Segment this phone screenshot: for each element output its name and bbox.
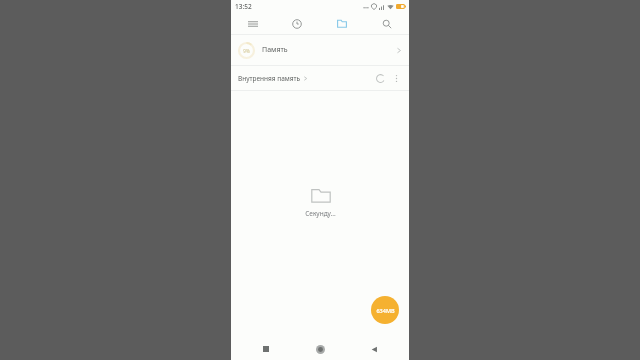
button[interactable]: Recents xyxy=(249,338,283,360)
staticText: 634MB xyxy=(376,307,395,314)
button[interactable]: 634MB xyxy=(371,296,399,324)
button[interactable]: Files xyxy=(319,13,364,34)
button[interactable]: Внутренняя память xyxy=(238,74,308,83)
button[interactable]: 9% xyxy=(231,35,409,65)
staticText: Секунду... xyxy=(305,209,336,218)
button[interactable]: Home xyxy=(303,338,337,360)
button[interactable]: Menu xyxy=(231,13,275,34)
staticText: 9% xyxy=(243,48,250,54)
button[interactable]: Search xyxy=(364,13,409,34)
button[interactable]: More options xyxy=(390,72,402,84)
button[interactable]: Loading xyxy=(373,71,387,85)
staticText: Внутренняя память xyxy=(238,74,301,83)
staticText: Память xyxy=(262,45,288,55)
staticText: 13:52 xyxy=(235,2,252,11)
button[interactable]: Recent xyxy=(275,13,319,34)
button[interactable]: Back xyxy=(357,338,391,360)
